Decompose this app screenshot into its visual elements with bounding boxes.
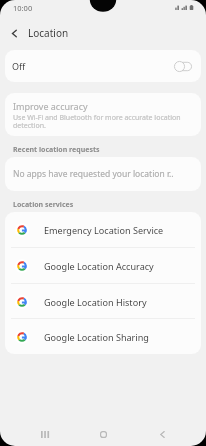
button[interactable]: Navigate up <box>0 20 28 46</box>
button[interactable]: Back <box>148 420 176 446</box>
staticText: 10:00 <box>13 3 33 13</box>
button[interactable]: Emergency Location Service <box>5 212 201 248</box>
button[interactable]: Google Location Sharing <box>5 319 201 354</box>
staticText: Location services <box>13 200 74 210</box>
button[interactable]: Improve accuracy <box>5 93 201 136</box>
staticText: Google Location Sharing <box>44 331 149 343</box>
staticText: Google Location Accuracy <box>44 260 154 272</box>
staticText: Location <box>28 26 69 40</box>
button[interactable]: Home <box>89 420 117 446</box>
staticText: Google Location History <box>44 296 147 308</box>
button[interactable]: Google Location Accuracy <box>5 248 201 284</box>
staticText: Recent location requests <box>13 145 100 155</box>
button[interactable]: Google Location History <box>5 284 201 319</box>
staticText: Improve accuracy <box>13 100 88 112</box>
staticText: Use Wi-Fi and Bluetooth for more accurat… <box>13 113 193 130</box>
button[interactable]: Off <box>5 50 201 82</box>
staticText: No apps have requested your location r.. <box>13 168 174 180</box>
staticText: Off <box>12 60 26 72</box>
button[interactable]: Recent apps <box>31 420 59 446</box>
staticText: Emergency Location Service <box>44 224 164 236</box>
